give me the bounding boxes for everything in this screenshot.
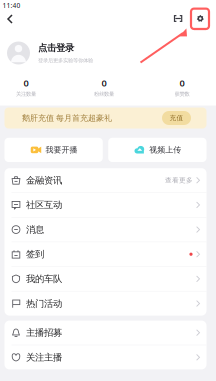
button[interactable]: 我要开播 bbox=[4, 138, 103, 162]
staticText: 粉丝数量 bbox=[94, 91, 114, 97]
staticText: 获赞数 bbox=[174, 91, 189, 97]
button[interactable]: 返回 bbox=[1, 10, 19, 28]
staticText: 点击登录 bbox=[38, 42, 74, 54]
button[interactable]: 消息 bbox=[4, 217, 206, 242]
staticText: 视频上传 bbox=[149, 145, 181, 155]
button[interactable]: 扫一扫 bbox=[170, 9, 187, 27]
button[interactable]: 关注主播 bbox=[4, 345, 206, 369]
staticText: 我的车队 bbox=[26, 273, 62, 285]
button[interactable]: 社区互动 bbox=[4, 193, 206, 217]
button[interactable]: 设置 bbox=[192, 9, 209, 27]
staticText: 查看更多 bbox=[165, 176, 193, 184]
staticText: 0 bbox=[179, 77, 184, 89]
staticText: 金融资讯 bbox=[26, 174, 62, 186]
button[interactable]: 金融资讯 bbox=[4, 168, 206, 192]
button[interactable]: 0 bbox=[0, 74, 52, 99]
button[interactable]: 点击登录 bbox=[7, 41, 187, 64]
staticText: 0 bbox=[23, 77, 28, 89]
staticText: 11:40 bbox=[3, 1, 21, 10]
button[interactable]: 0 bbox=[52, 74, 156, 99]
button[interactable]: 充值 bbox=[162, 111, 191, 125]
staticText: 登录后更多实验等你体验 bbox=[38, 57, 93, 64]
button[interactable]: 视频上传 bbox=[108, 138, 206, 162]
button[interactable]: 我的车队 bbox=[4, 267, 206, 291]
staticText: 消息 bbox=[26, 224, 44, 235]
staticText: 关注数量 bbox=[16, 91, 36, 97]
staticText: 热门活动 bbox=[26, 298, 62, 309]
button[interactable]: 热门活动 bbox=[4, 291, 206, 315]
button[interactable]: 主播招募 bbox=[4, 321, 206, 345]
staticText: 签到 bbox=[26, 248, 44, 260]
button[interactable]: 签到 bbox=[4, 242, 206, 266]
staticText: 主播招募 bbox=[26, 327, 62, 338]
staticText: 0 bbox=[101, 77, 106, 89]
staticText: 鹅肝充值 每月首充超豪礼 bbox=[22, 113, 112, 123]
staticText: 社区互动 bbox=[26, 199, 62, 211]
staticText: 关注主播 bbox=[26, 352, 62, 363]
staticText: 充值 bbox=[169, 114, 183, 122]
button[interactable]: 0 bbox=[156, 74, 208, 99]
staticText: 我要开播 bbox=[45, 145, 77, 155]
